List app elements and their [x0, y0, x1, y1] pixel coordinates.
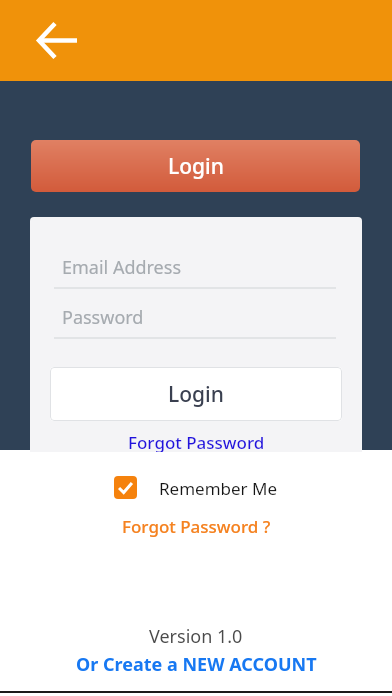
button[interactable]: Login	[50, 367, 342, 421]
staticText: Login	[168, 152, 224, 181]
staticText: Email Address	[62, 255, 182, 280]
button[interactable]: Or Create a NEW ACCOUNT	[76, 652, 317, 677]
staticText: Password	[62, 305, 144, 330]
button[interactable]: Forgot Password ?	[122, 515, 271, 538]
staticText: Forgot Password ?	[122, 515, 271, 538]
staticText: Remember Me	[159, 477, 278, 500]
staticText: Version 1.0	[149, 624, 243, 649]
button[interactable]	[33, 16, 83, 66]
button[interactable]	[114, 476, 137, 499]
button[interactable]: Login	[31, 140, 360, 192]
button[interactable]: Forgot Password	[128, 431, 265, 454]
staticText: Login	[168, 380, 224, 409]
staticText: Forgot Password	[128, 431, 265, 454]
staticText: Or Create a NEW ACCOUNT	[76, 652, 317, 677]
